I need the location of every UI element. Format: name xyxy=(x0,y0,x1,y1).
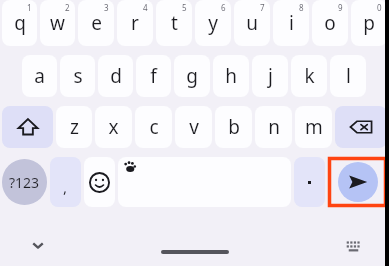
staticText: 9 xyxy=(338,2,343,13)
button[interactable]: w xyxy=(40,0,75,46)
button[interactable]: Backspace xyxy=(335,106,387,148)
staticText: 8 xyxy=(299,2,304,13)
staticText: n xyxy=(268,114,280,140)
staticText: , xyxy=(63,177,68,197)
staticText: g xyxy=(186,63,198,89)
staticText: 7 xyxy=(260,2,265,13)
staticText: c xyxy=(149,114,159,140)
button[interactable]: h xyxy=(213,55,249,97)
staticText: 1 xyxy=(27,2,32,13)
staticText: r xyxy=(131,10,139,36)
staticText: j xyxy=(268,63,273,89)
button[interactable]: Emoji xyxy=(84,157,115,207)
button[interactable]: n xyxy=(255,106,292,148)
button[interactable] xyxy=(294,157,325,207)
staticText: k xyxy=(304,63,315,89)
button[interactable]: g xyxy=(174,55,210,97)
staticText: 5 xyxy=(182,2,187,13)
button[interactable]: r xyxy=(117,0,153,46)
staticText: d xyxy=(110,63,122,89)
button[interactable]: Change keyboard xyxy=(339,231,367,259)
button[interactable]: d xyxy=(98,55,133,97)
staticText: ?123 xyxy=(9,173,40,192)
button[interactable]: p xyxy=(351,0,387,46)
staticText: o xyxy=(324,10,336,36)
staticText: 2 xyxy=(65,2,70,13)
staticText: f xyxy=(150,63,157,89)
staticText: y xyxy=(208,10,218,36)
button[interactable]: Shift xyxy=(2,106,53,148)
button[interactable]: s xyxy=(60,55,95,97)
staticText: b xyxy=(228,114,240,140)
button[interactable]: k xyxy=(291,55,327,97)
button[interactable]: Hide keyboard xyxy=(24,231,52,259)
button[interactable]: c xyxy=(135,106,172,148)
staticText: a xyxy=(34,63,45,89)
button[interactable]: t xyxy=(156,0,192,46)
staticText: m xyxy=(305,114,323,140)
staticText: v xyxy=(189,114,199,140)
button[interactable]: u xyxy=(234,0,270,46)
button[interactable]: Space xyxy=(118,157,291,207)
button[interactable]: f xyxy=(136,55,171,97)
button[interactable]: m xyxy=(295,106,332,148)
staticText: 0 xyxy=(377,2,382,13)
staticText: z xyxy=(70,114,79,140)
button[interactable]: o xyxy=(312,0,348,46)
button[interactable]: i xyxy=(273,0,309,46)
staticText: p xyxy=(363,10,375,36)
staticText: x xyxy=(108,114,119,140)
button[interactable]: z xyxy=(56,106,92,148)
button[interactable]: e xyxy=(78,0,114,46)
staticText: e xyxy=(91,10,102,36)
staticText: q xyxy=(14,10,26,36)
button[interactable]: b xyxy=(215,106,252,148)
staticText: l xyxy=(346,63,351,89)
button[interactable]: x xyxy=(95,106,132,148)
button[interactable]: ?123 xyxy=(2,159,47,205)
staticText: 4 xyxy=(143,2,148,13)
button[interactable]: j xyxy=(252,55,288,97)
button[interactable]: Send xyxy=(338,162,378,202)
staticText: h xyxy=(225,63,237,89)
button[interactable]: y xyxy=(195,0,231,46)
button[interactable]: v xyxy=(175,106,212,148)
button[interactable]: l xyxy=(330,55,366,97)
staticText: s xyxy=(73,63,83,89)
button[interactable]: a xyxy=(22,55,57,97)
button[interactable]: , xyxy=(50,157,81,207)
button[interactable]: q xyxy=(2,0,37,46)
staticText: 3 xyxy=(104,2,109,13)
staticText: t xyxy=(171,10,178,36)
staticText: u xyxy=(246,10,258,36)
staticText: w xyxy=(50,10,65,36)
staticText: 6 xyxy=(221,2,226,13)
staticText: i xyxy=(289,10,294,36)
